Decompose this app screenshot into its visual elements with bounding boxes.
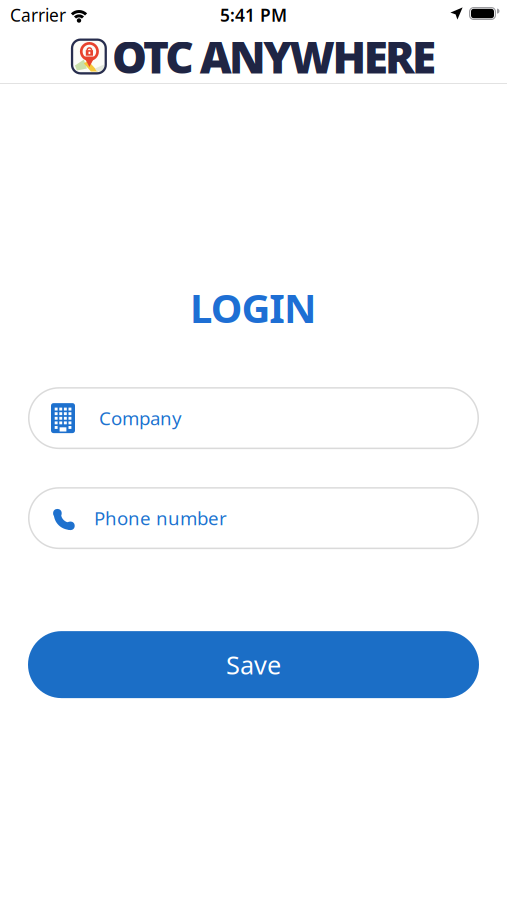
staticText: Company [99,406,182,430]
staticText: Phone number [94,506,227,530]
button[interactable]: Company [28,387,479,449]
button[interactable]: Save [28,631,479,698]
button[interactable]: Phone number [28,487,479,549]
staticText: 5:41 PM [220,3,287,26]
staticText: OTC ANYWHERE [112,27,436,86]
staticText: Carrier [10,3,66,26]
staticText: LOGIN [190,281,317,334]
staticText: Save [226,648,281,681]
